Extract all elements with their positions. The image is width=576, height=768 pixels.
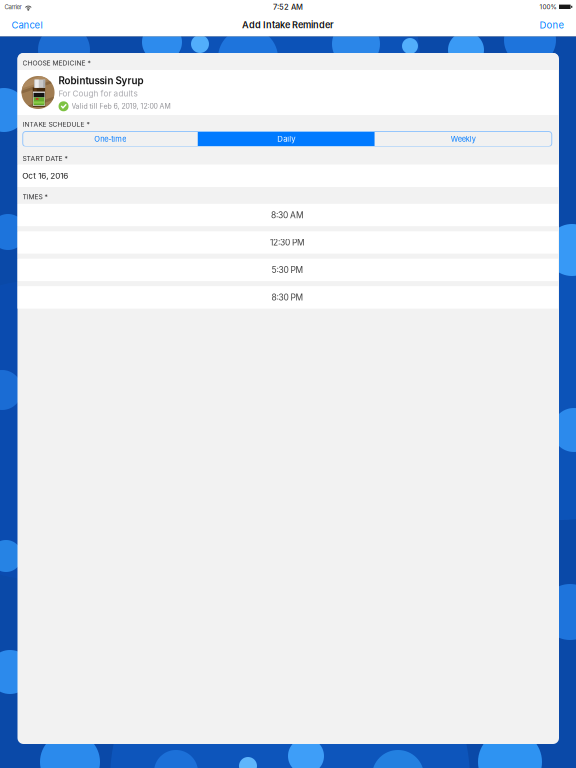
staticText: TIMES * xyxy=(23,193,48,201)
button[interactable]: 8:30 AM xyxy=(17,204,558,226)
staticText: One-time xyxy=(94,134,126,143)
staticText: Weekly xyxy=(451,134,476,143)
staticText: Valid till Feb 6, 2019, 12:00 AM xyxy=(71,102,170,110)
staticText: 8:30 PM xyxy=(271,292,303,302)
staticText: 100% xyxy=(539,3,556,11)
button[interactable]: Cancel xyxy=(0,14,53,36)
staticText: START DATE * xyxy=(23,154,68,162)
staticText: CHOOSE MEDICINE * xyxy=(23,59,91,67)
button[interactable]: 12:30 PM xyxy=(17,231,558,254)
staticText: Robintussin Syrup xyxy=(58,75,143,87)
staticText: Daily xyxy=(277,134,295,144)
staticText: 5:30 PM xyxy=(271,265,303,275)
button[interactable]: 8:30 PM xyxy=(17,286,558,309)
staticText: Cancel xyxy=(11,19,42,31)
staticText: For Cough for adults xyxy=(58,89,137,98)
button[interactable]: Weekly xyxy=(375,131,552,146)
staticText: INTAKE SCHEDULE * xyxy=(23,120,90,128)
button[interactable]: Oct 16, 2016 xyxy=(17,164,558,187)
staticText: 7:52 AM xyxy=(273,2,303,12)
button[interactable]: One-time xyxy=(23,131,198,146)
staticText: 8:30 AM xyxy=(271,210,304,220)
staticText: Oct 16, 2016 xyxy=(22,171,68,181)
button[interactable]: 5:30 PM xyxy=(17,259,558,281)
staticText: Done xyxy=(539,19,564,31)
button[interactable]: Done xyxy=(529,14,576,36)
staticText: Carrier xyxy=(5,3,22,11)
staticText: 12:30 PM xyxy=(270,237,305,248)
staticText: Add Intake Reminder xyxy=(242,19,334,30)
button[interactable]: Daily xyxy=(198,131,375,146)
button[interactable]: Robintussin Syrup xyxy=(17,70,558,115)
